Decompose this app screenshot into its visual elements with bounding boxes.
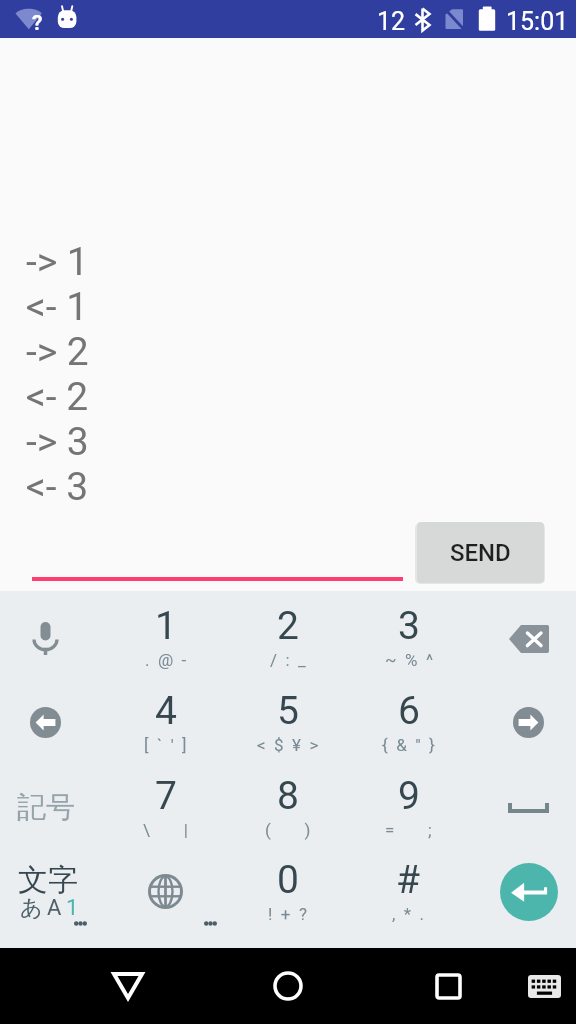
- staticText: 4: [155, 688, 177, 734]
- button[interactable]: Space: [471, 765, 576, 850]
- staticText: あ: [20, 894, 43, 922]
- staticText: -> 2: [26, 329, 89, 374]
- staticText: 8: [277, 773, 299, 819]
- staticText: 文字: [18, 861, 78, 899]
- staticText: , * .: [392, 904, 425, 924]
- staticText: [ ` ' ]: [144, 735, 187, 755]
- button[interactable]: 7: [108, 764, 223, 849]
- staticText: SEND: [450, 539, 511, 567]
- button[interactable]: 2: [230, 594, 345, 679]
- button[interactable]: 0: [230, 848, 345, 933]
- button[interactable]: 4: [108, 679, 223, 764]
- staticText: 3: [398, 603, 420, 649]
- button[interactable]: 1: [108, 594, 223, 679]
- staticText: 15:01: [506, 7, 569, 36]
- staticText: ?: [32, 11, 43, 36]
- staticText: 2: [277, 603, 299, 649]
- button[interactable]: 8: [230, 764, 345, 849]
- staticText: -> 3: [26, 419, 89, 464]
- staticText: <- 2: [26, 374, 89, 419]
- staticText: \ |: [143, 820, 188, 840]
- staticText: ~ % ^: [385, 650, 433, 670]
- button[interactable]: Home: [258, 960, 318, 1012]
- staticText: A: [47, 895, 62, 921]
- staticText: <- 3: [26, 464, 89, 509]
- button[interactable]: Change input mode: [0, 849, 103, 934]
- staticText: = ;: [385, 820, 432, 840]
- button[interactable]: Enter: [471, 849, 576, 934]
- button[interactable]: #: [351, 848, 466, 933]
- staticText: 12: [377, 7, 406, 36]
- staticText: ( ): [265, 820, 311, 840]
- staticText: 記号: [17, 789, 75, 826]
- staticText: < $ ¥ >: [257, 735, 319, 755]
- button[interactable]: Voice input: [0, 596, 103, 681]
- staticText: 0: [277, 857, 299, 903]
- staticText: 5: [277, 688, 299, 734]
- staticText: 1: [155, 603, 177, 649]
- staticText: 7: [155, 773, 177, 819]
- staticText: 1: [66, 895, 79, 921]
- staticText: <- 1: [26, 284, 89, 329]
- button[interactable]: 6: [351, 679, 466, 764]
- staticText: #: [396, 857, 421, 903]
- staticText: / : _: [270, 650, 306, 670]
- button[interactable]: Recent apps: [418, 960, 478, 1012]
- button[interactable]: Move cursor right: [471, 680, 576, 765]
- staticText: ! + ?: [268, 904, 307, 924]
- button[interactable]: Symbols: [0, 765, 103, 850]
- button[interactable]: Change language: [108, 849, 223, 934]
- button[interactable]: 3: [351, 594, 466, 679]
- staticText: . @ -: [145, 650, 187, 670]
- staticText: 6: [398, 688, 420, 734]
- button[interactable]: Switch keyboard: [518, 964, 570, 1008]
- staticText: 9: [398, 773, 420, 819]
- button[interactable]: SEND: [417, 522, 544, 583]
- button[interactable]: Back: [98, 960, 158, 1012]
- staticText: { & " }: [382, 735, 435, 755]
- button[interactable]: 9: [351, 764, 466, 849]
- button[interactable]: Move cursor left: [0, 680, 103, 765]
- staticText: -> 1: [26, 239, 89, 284]
- button[interactable]: 5: [230, 679, 345, 764]
- button[interactable]: Backspace: [471, 596, 576, 681]
